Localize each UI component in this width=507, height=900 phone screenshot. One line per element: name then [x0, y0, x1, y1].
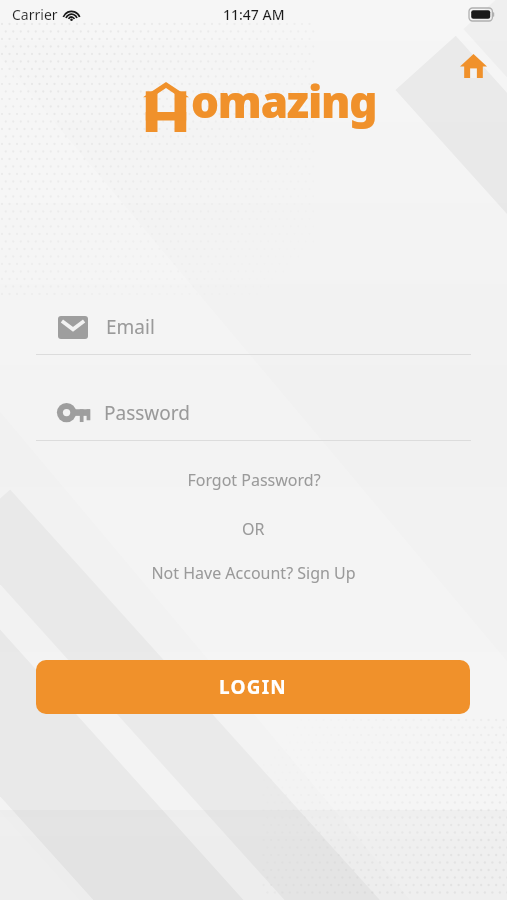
button[interactable]: Home	[451, 44, 495, 88]
staticText: Email	[106, 314, 155, 340]
button[interactable]: Email	[36, 300, 471, 354]
staticText: LOGIN	[219, 674, 287, 700]
button[interactable]: Forgot Password?	[177, 466, 331, 494]
staticText: Not Have Account? Sign Up	[151, 562, 356, 584]
staticText: omazing	[191, 71, 377, 131]
staticText: Forgot Password?	[187, 469, 321, 491]
staticText: OR	[242, 518, 265, 540]
staticText: 11:47 AM	[223, 5, 285, 24]
staticText: Password	[104, 400, 190, 426]
button[interactable]: Not Have Account? Sign Up	[141, 559, 366, 587]
button[interactable]: Password	[36, 386, 471, 440]
button[interactable]: LOGIN	[36, 660, 470, 714]
staticText: Carrier	[12, 5, 58, 24]
